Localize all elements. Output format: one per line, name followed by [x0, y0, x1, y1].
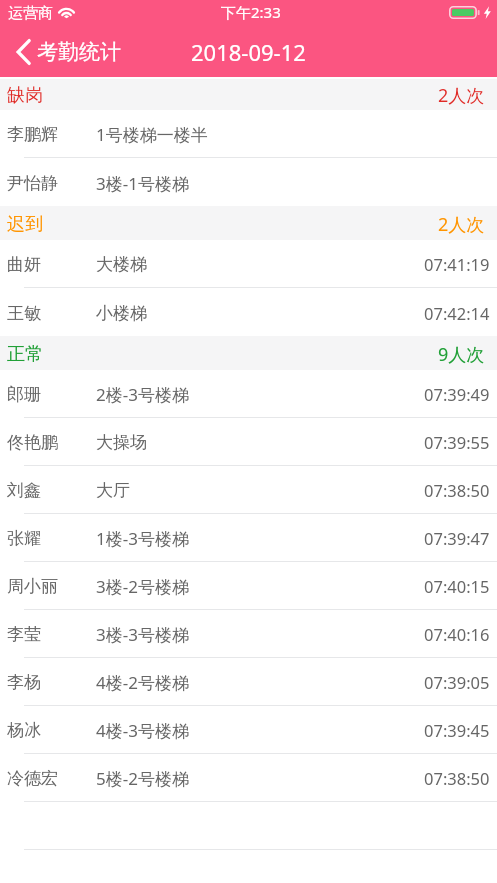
button[interactable]: Back	[0, 31, 129, 73]
button[interactable]: 周小丽	[0, 562, 497, 610]
staticText: 大楼梯	[96, 254, 147, 275]
staticText: 运营商	[8, 4, 53, 23]
staticText: 1楼-3号楼梯	[96, 527, 189, 550]
staticText: 小楼梯	[96, 303, 147, 324]
staticText: 杨冰	[7, 720, 41, 741]
staticText: 3楼-2号楼梯	[96, 575, 189, 598]
staticText: 冷德宏	[7, 768, 58, 789]
staticText: 07:38:50	[424, 479, 490, 501]
staticText: 07:42:14	[424, 302, 490, 324]
button[interactable]: 冷德宏	[0, 754, 497, 802]
button[interactable]	[0, 802, 497, 850]
staticText: 07:39:45	[424, 719, 490, 741]
staticText: 周小丽	[7, 576, 58, 597]
staticText: 2人次	[438, 83, 485, 108]
button[interactable]: 杨冰	[0, 706, 497, 754]
staticText: 下午2:33	[221, 2, 281, 22]
button[interactable]: 郎珊	[0, 370, 497, 418]
staticText: 王敏	[7, 303, 41, 324]
staticText: 考勤统计	[37, 39, 121, 65]
staticText: 大操场	[96, 432, 147, 453]
staticText: 缺岗	[7, 84, 43, 107]
staticText: 5楼-2号楼梯	[96, 767, 189, 790]
staticText: 正常	[7, 343, 43, 366]
staticText: 3楼-3号楼梯	[96, 623, 189, 646]
staticText: 佟艳鹏	[7, 432, 58, 453]
staticText: 迟到	[7, 213, 43, 236]
button[interactable]: 佟艳鹏	[0, 418, 497, 466]
button[interactable]: 李莹	[0, 610, 497, 658]
staticText: 2楼-3号楼梯	[96, 383, 189, 406]
staticText: 07:39:05	[424, 671, 490, 693]
staticText: 07:40:15	[424, 575, 490, 597]
button[interactable]: 李杨	[0, 658, 497, 706]
staticText: 大厅	[96, 480, 130, 501]
staticText: 07:39:49	[424, 383, 490, 405]
staticText: 李鹏辉	[7, 124, 58, 145]
staticText: 曲妍	[7, 254, 41, 275]
staticText: 4楼-3号楼梯	[96, 719, 189, 742]
staticText: 3楼-1号楼梯	[96, 172, 189, 195]
staticText: 郎珊	[7, 384, 41, 405]
staticText: 07:39:47	[424, 527, 490, 549]
staticText: 2人次	[438, 212, 485, 237]
staticText: 07:38:50	[424, 767, 490, 789]
other: Back	[16, 39, 31, 65]
staticText: 07:40:16	[424, 623, 490, 645]
button[interactable]: 曲妍	[0, 240, 497, 288]
button[interactable]: 王敏	[0, 288, 497, 336]
staticText: 2018-09-12	[191, 37, 306, 67]
button[interactable]: 尹怡静	[0, 158, 497, 206]
staticText: 4楼-2号楼梯	[96, 671, 189, 694]
staticText: 1号楼梯一楼半	[96, 123, 208, 146]
button[interactable]: 李鹏辉	[0, 110, 497, 158]
staticText: 李杨	[7, 672, 41, 693]
button[interactable]: 张耀	[0, 514, 497, 562]
staticText: 尹怡静	[7, 173, 58, 194]
staticText: 张耀	[7, 528, 41, 549]
staticText: 07:41:19	[424, 253, 490, 275]
staticText: 9人次	[438, 342, 485, 367]
staticText: 07:39:55	[424, 431, 490, 453]
staticText: 刘鑫	[7, 480, 41, 501]
staticText: 李莹	[7, 624, 41, 645]
button[interactable]: 刘鑫	[0, 466, 497, 514]
